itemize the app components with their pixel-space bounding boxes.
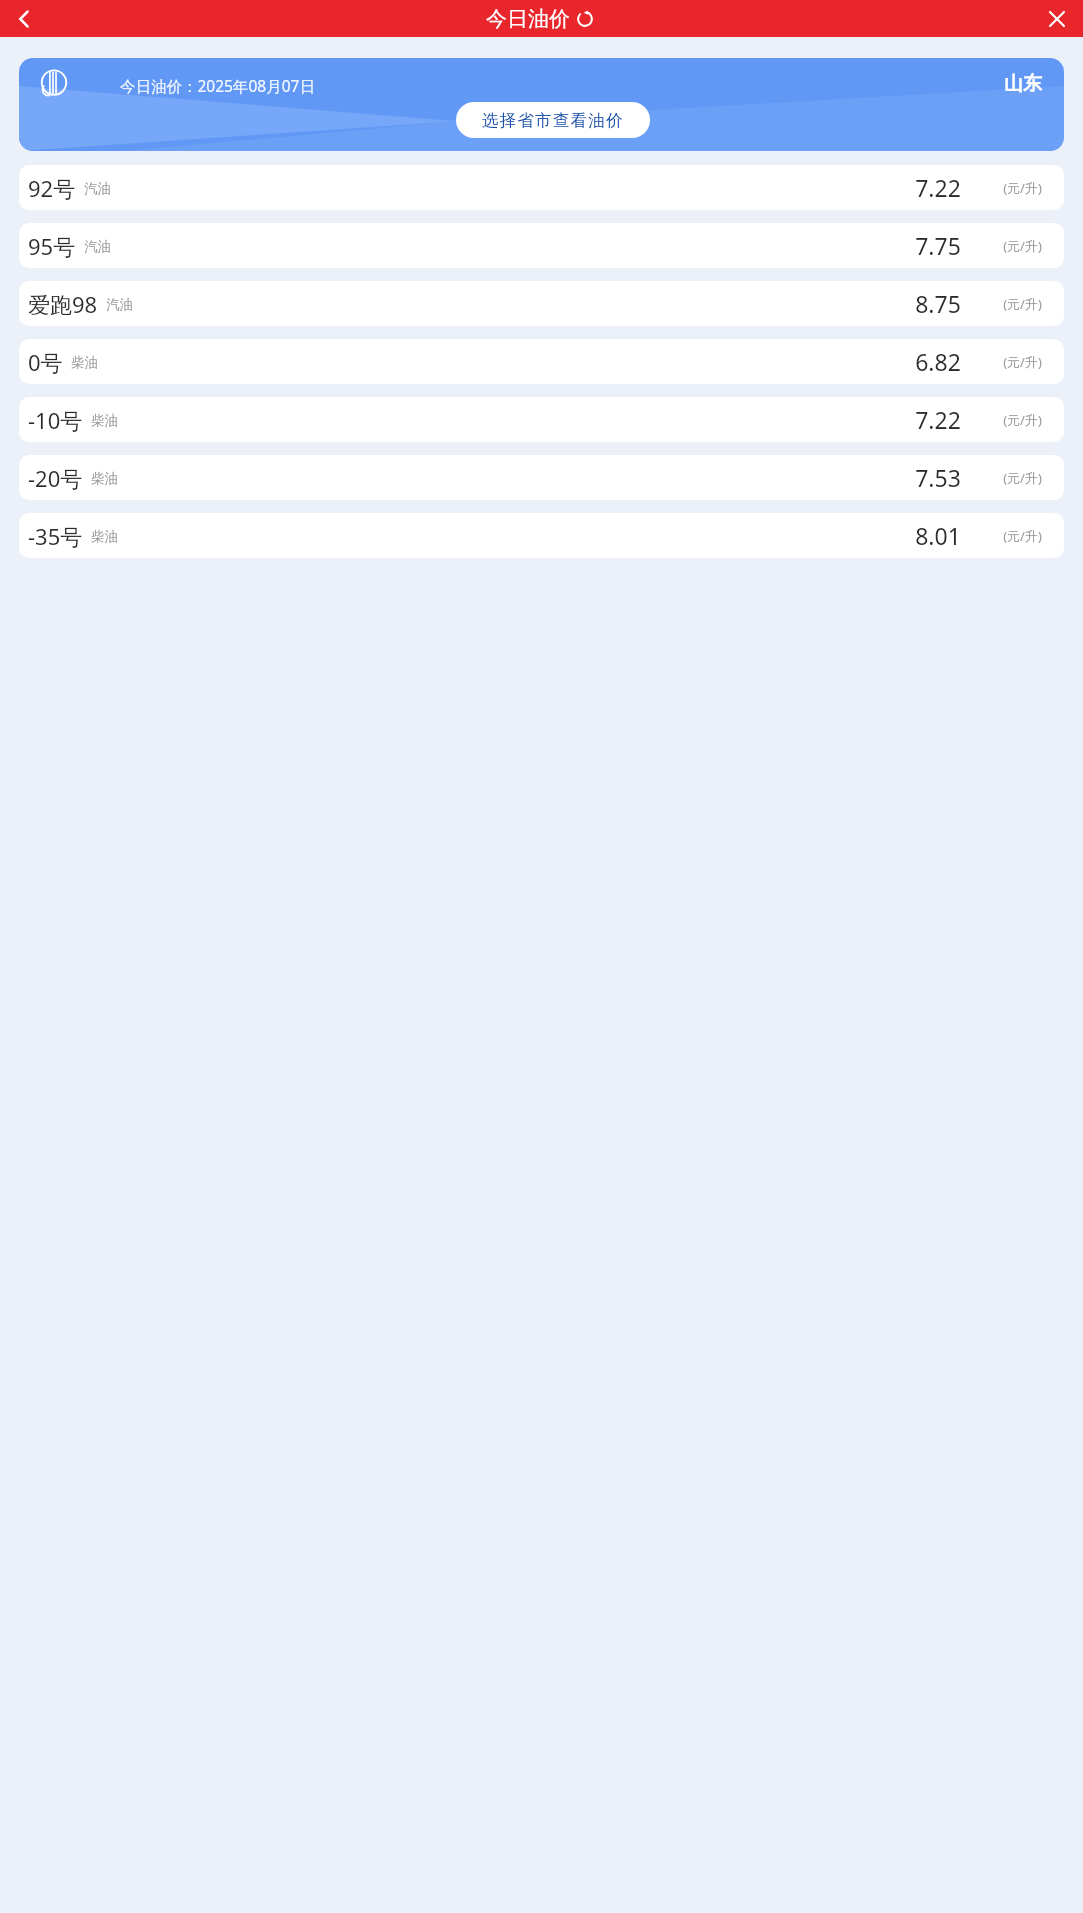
staticText: 7.22: [915, 172, 961, 203]
button[interactable]: 今日油价：2025年08月07日: [19, 58, 1064, 151]
staticText: 汽油: [106, 296, 133, 313]
staticText: 选择省市查看油价: [482, 110, 624, 131]
staticText: (元/升): [1003, 179, 1042, 197]
staticText: 爱跑98: [28, 289, 98, 319]
staticText: -35号: [28, 521, 83, 551]
button[interactable]: -20号: [19, 455, 1064, 500]
staticText: 柴油: [91, 528, 118, 545]
staticText: -10号: [28, 405, 83, 435]
button[interactable]: 95号: [19, 223, 1064, 268]
staticText: (元/升): [1003, 469, 1042, 487]
staticText: 今日油价：2025年08月07日: [120, 75, 315, 96]
staticText: 95号: [28, 231, 76, 261]
staticText: 柴油: [91, 470, 118, 487]
staticText: (元/升): [1003, 353, 1042, 371]
staticText: 0号: [28, 347, 63, 377]
staticText: 7.75: [915, 230, 961, 261]
staticText: 汽油: [84, 180, 111, 197]
staticText: 今日油价: [486, 6, 570, 32]
staticText: 7.53: [915, 462, 961, 493]
staticText: (元/升): [1003, 295, 1042, 313]
button[interactable]: 爱跑98: [19, 281, 1064, 326]
button[interactable]: Refresh: [572, 6, 598, 32]
staticText: (元/升): [1003, 237, 1042, 255]
staticText: 8.75: [915, 288, 961, 319]
button[interactable]: 0号: [19, 339, 1064, 384]
staticText: 汽油: [84, 238, 111, 255]
staticText: 92号: [28, 173, 76, 203]
staticText: -20号: [28, 463, 83, 493]
staticText: 7.22: [915, 404, 961, 435]
staticText: 6.82: [915, 346, 961, 377]
button[interactable]: Close: [1039, 1, 1075, 37]
button[interactable]: 山东: [1004, 72, 1042, 96]
button[interactable]: Back: [6, 1, 42, 37]
button[interactable]: 选择省市查看油价: [456, 102, 650, 138]
staticText: 8.01: [915, 520, 961, 551]
button[interactable]: 92号: [19, 165, 1064, 210]
button[interactable]: -10号: [19, 397, 1064, 442]
staticText: 柴油: [91, 412, 118, 429]
staticText: (元/升): [1003, 411, 1042, 429]
button[interactable]: -35号: [19, 513, 1064, 558]
staticText: (元/升): [1003, 527, 1042, 545]
staticText: 柴油: [71, 354, 98, 371]
